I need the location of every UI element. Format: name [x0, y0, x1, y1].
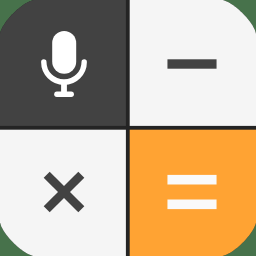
button[interactable]: Equals [128, 128, 256, 256]
button[interactable]: Subtract [128, 0, 256, 128]
button[interactable]: Multiply [0, 128, 128, 256]
button[interactable]: Voice input [0, 0, 128, 128]
